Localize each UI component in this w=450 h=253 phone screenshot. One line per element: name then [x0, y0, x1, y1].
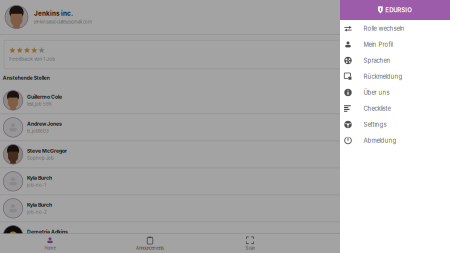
staticText: Abmeldung — [363, 137, 396, 144]
staticText: Mein Profil — [363, 41, 392, 48]
staticText: Demetria Adkins — [27, 229, 68, 235]
button[interactable]: Über uns — [340, 84, 450, 100]
button[interactable]: Mein Profil — [340, 36, 450, 52]
staticText: job-no-2 — [27, 210, 47, 215]
button[interactable]: Demetria Adkins — [0, 222, 450, 249]
staticText: Sprachen — [363, 57, 390, 64]
button[interactable]: Checkliste — [340, 100, 450, 116]
staticText: Sopnop Job — [27, 156, 54, 161]
button[interactable]: Home — [0, 234, 100, 253]
staticText: Rückmeldung — [363, 73, 402, 80]
staticText: Home — [44, 246, 55, 251]
staticText: Andrew Jones — [27, 121, 62, 127]
button[interactable]: Andrew Jones — [0, 114, 450, 141]
button[interactable]: Guillermo Cole — [0, 87, 450, 114]
button[interactable]: Scan — [200, 234, 300, 253]
staticText: Anstehende Stellen — [3, 75, 50, 81]
button[interactable]: Kyla Burch — [0, 195, 450, 222]
staticText: Scan — [245, 246, 254, 251]
staticText: B_job1603 — [27, 129, 49, 134]
staticText: Kyla Burch — [27, 202, 52, 208]
staticText: jenkinsassociates@gmail.com — [34, 19, 92, 24]
staticText: EDURSIO — [385, 6, 412, 14]
staticText: Steve McGregor — [27, 148, 67, 154]
staticText: Jenkins inc. — [34, 9, 73, 17]
staticText: Announcements — [136, 246, 164, 251]
staticText: Settings — [363, 121, 386, 128]
staticText: Guillermo Cole — [27, 94, 62, 100]
staticText: Feedback von 1 Job — [9, 56, 55, 62]
staticText: test_job 596 — [27, 102, 52, 107]
staticText: Über uns — [363, 89, 389, 96]
button[interactable]: Rückmeldung — [340, 68, 450, 84]
staticText: Checkliste — [363, 105, 390, 112]
staticText: Kyla Burch — [27, 175, 52, 181]
button[interactable]: Announcements — [100, 234, 200, 253]
button[interactable]: Steve McGregor — [0, 141, 450, 168]
button[interactable]: Sprachen — [340, 52, 450, 68]
staticText: job-no-1 — [27, 183, 46, 188]
button[interactable]: Abmeldung — [340, 132, 450, 148]
button[interactable]: Kyla Burch — [0, 168, 450, 195]
staticText: Rolle wechseln — [363, 25, 404, 32]
button[interactable]: Settings — [340, 116, 450, 132]
button[interactable]: Rolle wechseln — [340, 20, 450, 36]
button[interactable]: Settings — [300, 234, 400, 253]
